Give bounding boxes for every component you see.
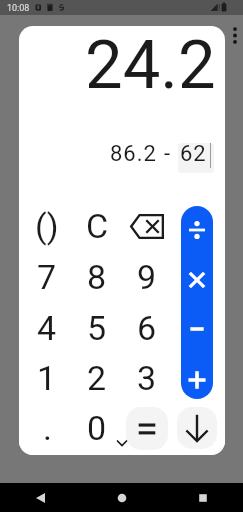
button[interactable]: () (23, 202, 71, 250)
button[interactable]: . (23, 404, 71, 452)
staticText: . (43, 408, 52, 448)
staticText: 2 (87, 358, 107, 398)
staticText: C (86, 206, 109, 246)
staticText: 24.2 (85, 26, 216, 105)
button[interactable]: 0 (73, 404, 121, 452)
staticText: 8 (87, 257, 107, 297)
button[interactable]: Show history (177, 407, 217, 449)
button[interactable]: Multiply (181, 256, 213, 304)
button[interactable]: Home (81, 483, 162, 512)
staticText: - (164, 141, 171, 167)
button[interactable]: Subtract (181, 305, 213, 353)
staticText: 3 (137, 358, 157, 398)
button[interactable]: 1 (23, 354, 71, 402)
button[interactable]: 7 (23, 253, 71, 301)
staticText: () (35, 206, 59, 246)
button[interactable]: Recent apps (162, 483, 243, 512)
button[interactable]: 5 (73, 304, 121, 352)
button[interactable]: 4 (23, 304, 71, 352)
button[interactable]: 9 (123, 253, 171, 301)
staticText: 6 (137, 308, 157, 348)
other: Backspace (123, 202, 171, 250)
staticText: 9 (137, 257, 157, 297)
button[interactable]: Back (0, 483, 81, 512)
button[interactable]: C (73, 202, 121, 250)
staticText: 1 (37, 358, 57, 398)
staticText: 86.2 (110, 141, 157, 167)
button[interactable]: Equals (126, 407, 168, 450)
staticText: 62 (180, 143, 207, 167)
button[interactable]: 3 (123, 354, 171, 402)
button[interactable]: Divide (181, 206, 213, 254)
button[interactable]: 6 (123, 304, 171, 352)
button[interactable]: 8 (73, 253, 121, 301)
staticText: 4 (37, 308, 57, 348)
staticText: 5 (87, 308, 107, 348)
button[interactable]: Add (181, 356, 213, 399)
button[interactable]: Backspace (123, 202, 171, 250)
staticText: 7 (37, 257, 57, 297)
staticText: 0 (87, 408, 107, 448)
staticText: 10:08 (7, 3, 30, 14)
button[interactable]: 2 (73, 354, 121, 402)
button[interactable]: More options (227, 22, 243, 49)
